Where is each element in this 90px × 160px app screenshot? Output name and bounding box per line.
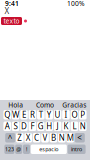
button[interactable]: N (58, 133, 66, 142)
button[interactable]: R (29, 110, 36, 119)
staticText: R (30, 109, 35, 120)
button[interactable]: Z (16, 133, 24, 142)
staticText: X (4, 6, 9, 16)
button[interactable]: D (20, 121, 28, 131)
staticText: F (30, 121, 34, 131)
button[interactable]: 123 (4, 144, 14, 154)
staticText: S (14, 121, 18, 131)
button[interactable]: E (20, 110, 28, 119)
staticText: espacio (39, 146, 58, 153)
button[interactable]: N (79, 121, 87, 131)
staticText: B (51, 132, 56, 143)
button[interactable]: J (54, 121, 61, 131)
button[interactable]: W (12, 110, 19, 119)
staticText: ! (26, 146, 27, 153)
button[interactable]: Close (2, 7, 12, 15)
button[interactable]: T (37, 110, 45, 119)
button[interactable]: A (3, 121, 11, 131)
staticText: T (39, 109, 43, 120)
button[interactable]: S (12, 121, 19, 131)
staticText: H (46, 121, 52, 131)
staticText: C (34, 132, 39, 143)
staticText: K (63, 121, 68, 131)
staticText: 9:41 (5, 0, 19, 8)
staticText: N (59, 132, 65, 143)
staticText: Q (4, 109, 10, 120)
button[interactable]: Q (3, 110, 11, 119)
staticText: P (80, 109, 85, 120)
staticText: ^ (8, 132, 13, 143)
staticText: Z (17, 132, 22, 143)
staticText: intro (71, 146, 82, 153)
staticText: E (22, 109, 26, 120)
staticText: L (72, 121, 76, 131)
button[interactable]: G (37, 121, 45, 131)
staticText: O (71, 109, 77, 120)
button[interactable]: H (45, 121, 53, 131)
staticText: D (21, 121, 27, 131)
button[interactable]: C (33, 133, 40, 142)
button[interactable]: O (71, 110, 78, 119)
button[interactable]: ^ (5, 133, 15, 142)
staticText: M (67, 132, 74, 143)
staticText: G (38, 121, 44, 131)
button[interactable]: X (24, 133, 32, 142)
staticText: texto (3, 17, 19, 25)
staticText: Hola (8, 101, 23, 109)
staticText: I (64, 109, 67, 120)
button[interactable]: V (41, 133, 49, 142)
staticText: X (26, 132, 31, 143)
staticText: V (42, 132, 47, 143)
button[interactable]: @ (15, 144, 22, 154)
button[interactable]: Y (45, 110, 53, 119)
staticText: Gracias (62, 101, 86, 109)
button[interactable]: < (75, 133, 85, 142)
staticText: U (55, 109, 61, 120)
staticText: N (80, 121, 86, 131)
staticText: @ (16, 146, 21, 153)
staticText: W (12, 109, 19, 120)
button[interactable]: ! (23, 144, 30, 154)
staticText: 123 (5, 146, 14, 153)
button[interactable]: P (79, 110, 87, 119)
staticText: J (57, 121, 59, 131)
button[interactable]: L (71, 121, 78, 131)
staticText: < (77, 132, 82, 143)
staticText: A (5, 121, 10, 131)
staticText: Y (47, 109, 52, 120)
button[interactable]: B (50, 133, 57, 142)
button[interactable]: intro (68, 144, 86, 154)
staticText: Como (36, 101, 54, 109)
staticText: 100% (67, 0, 85, 8)
button[interactable]: U (54, 110, 61, 119)
button[interactable]: K (62, 121, 70, 131)
button[interactable]: F (29, 121, 36, 131)
button[interactable]: M (66, 133, 74, 142)
button[interactable]: espacio (31, 144, 67, 154)
button[interactable]: I (62, 110, 70, 119)
